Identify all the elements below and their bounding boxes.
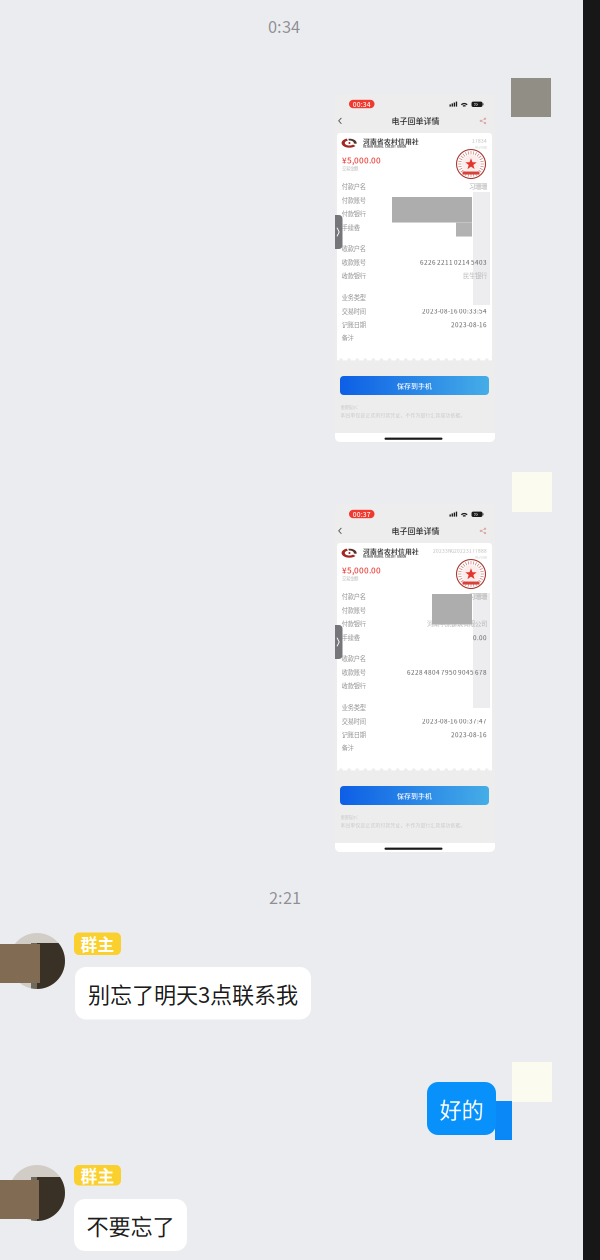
staticText: 收款银行 [342, 681, 366, 690]
staticText: 业务类型 [342, 293, 366, 302]
button[interactable]: 不要忘了 [74, 1199, 187, 1251]
staticText: ¥5,000.00 [342, 154, 381, 166]
staticText: 河南中原建筑有限公司 [427, 619, 487, 628]
staticText: 交易时间 [342, 306, 366, 316]
button[interactable]: 保存到手机 [340, 786, 489, 805]
button[interactable]: Avatar [9, 1165, 65, 1221]
staticText: 重要提示： [341, 813, 361, 820]
button[interactable]: Expand [329, 625, 342, 659]
staticText: 2:21 [269, 885, 301, 909]
staticText: 保存到手机 [397, 380, 432, 390]
staticText: 付款账号 [342, 195, 366, 205]
staticText: 2023-08-16 00:37:47 [422, 716, 487, 725]
staticText: 00:37 [353, 509, 371, 519]
staticText: 好的 [439, 1092, 483, 1124]
staticText: 不要忘了 [86, 1209, 174, 1241]
staticText: 业务类型 [342, 703, 366, 712]
button[interactable]: Expand [329, 215, 342, 249]
staticText: 习珊珊 [469, 181, 487, 191]
button[interactable]: 群主 [74, 932, 121, 955]
staticText: 收款账号 [342, 667, 366, 677]
staticText: 6228 4804 7950 9045 678 [407, 667, 487, 677]
staticText: 付款银行 [342, 209, 366, 218]
staticText: 付款账号 [342, 605, 366, 615]
staticText: 备注 [342, 333, 354, 342]
button[interactable]: 别忘了明天3点联系我 [75, 967, 311, 1019]
staticText: 习珊珊 [469, 591, 487, 601]
staticText: 电子回单详情 [391, 525, 439, 537]
staticText: 手续费 [342, 633, 360, 642]
staticText: 手续费 [342, 223, 360, 232]
staticText: 群主 [80, 932, 114, 956]
staticText: 2023-08-16 00:33:54 [422, 306, 487, 315]
staticText: 72 [474, 512, 478, 517]
staticText: 6226 2211 0214 5403 [420, 257, 487, 267]
staticText: 重要提示： [341, 403, 361, 410]
staticText: 20233NG20223177888 [433, 547, 487, 554]
staticText: 付款银行 [342, 619, 366, 628]
staticText: 交易金额 [342, 165, 358, 171]
staticText: 本回单仅是正式的付款凭证，不作为银行汇款成功依据。 [341, 411, 466, 418]
staticText: 河南省农村信用社 [363, 546, 419, 556]
staticText: 备注 [342, 743, 354, 752]
staticText: 记账日期 [342, 730, 366, 739]
staticText: 0.00 [473, 633, 487, 642]
staticText: ¥5,000.00 [342, 564, 381, 576]
staticText: 电子回单详情 [391, 115, 439, 127]
staticText: HENAN RURAL CREDIT UNION [363, 554, 406, 559]
staticText: 河南省农村信用社 [363, 136, 419, 146]
staticText: 交易金额 [342, 575, 358, 581]
button[interactable]: Avatar [9, 933, 65, 989]
staticText: 72 [474, 102, 478, 107]
button[interactable]: 保存到手机 [340, 376, 489, 395]
staticText: 收款银行 [342, 271, 366, 280]
staticText: 交易时间 [342, 716, 366, 726]
staticText: 别忘了明天3点联系我 [88, 977, 298, 1009]
staticText: 保存到手机 [397, 790, 432, 800]
button[interactable]: 群主 [74, 1165, 121, 1185]
staticText: 2023-08-16 [451, 320, 487, 329]
staticText: 本回单仅是正式的付款凭证，不作为银行汇款成功依据。 [341, 821, 466, 828]
staticText: 00:34 [353, 99, 371, 109]
staticText: HENAN RURAL CREDIT UNION [363, 144, 406, 149]
staticText: 收款账号 [342, 257, 366, 267]
staticText: 电子回单 [475, 555, 487, 560]
staticText: 付款户名 [342, 182, 366, 191]
staticText: 付款户名 [342, 592, 366, 601]
staticText: 记账日期 [342, 320, 366, 329]
staticText: 收款户名 [342, 654, 366, 663]
staticText: 17834 [472, 137, 487, 144]
button[interactable]: 好的 [427, 1082, 496, 1135]
staticText: 收款户名 [342, 244, 366, 253]
staticText: 0:34 [268, 14, 300, 38]
staticText: 群主 [80, 1163, 114, 1187]
staticText: 2023-08-16 [451, 730, 487, 739]
staticText: 民生银行 [463, 271, 487, 280]
staticText: 电子回单 [475, 145, 487, 150]
